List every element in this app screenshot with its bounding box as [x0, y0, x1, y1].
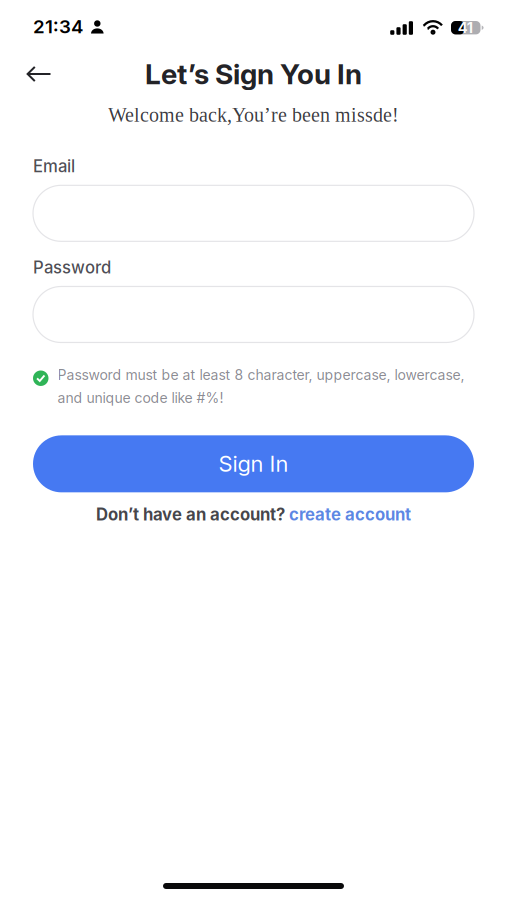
button[interactable]: Sign In	[33, 435, 474, 492]
staticText: Welcome back,You’re been missde!	[108, 104, 399, 126]
staticText: 21:34	[33, 15, 83, 38]
staticText: Email	[33, 156, 75, 176]
staticText: Password	[33, 257, 111, 277]
button[interactable]: Back	[17, 56, 61, 92]
staticText: Let’s Sign You In	[145, 57, 362, 91]
staticText: Don’t have an account?	[96, 504, 289, 525]
staticText: 41	[458, 19, 473, 36]
staticText: create account	[289, 504, 411, 525]
staticText: Password must be at least 8 character, u…	[57, 366, 464, 406]
button[interactable]: create account	[289, 504, 411, 525]
staticText: Sign In	[218, 451, 288, 477]
